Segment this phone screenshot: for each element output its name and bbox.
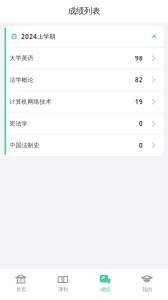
staticText: 我的: [142, 286, 152, 293]
button[interactable]: 课程: [42, 274, 84, 293]
button[interactable]: 宪法学: [4, 113, 163, 134]
button[interactable]: 首页: [0, 274, 42, 293]
button[interactable]: 法学概论: [4, 69, 163, 91]
staticText: 宪法学: [9, 120, 27, 127]
staticText: 课程: [58, 286, 68, 293]
staticText: 法学概论: [9, 76, 33, 84]
staticText: 19: [135, 98, 143, 106]
button[interactable]: 计算机网络技术: [4, 91, 163, 112]
button[interactable]: 成绩: [84, 274, 126, 293]
staticText: 2024上学期: [21, 32, 55, 41]
button[interactable]: 中国法制史: [4, 135, 163, 156]
staticText: 计算机网络技术: [9, 98, 51, 105]
button[interactable]: 2024上学期: [4, 26, 163, 47]
staticText: 82: [135, 76, 143, 84]
staticText: 98: [135, 54, 143, 62]
staticText: 0: [139, 141, 143, 150]
staticText: 中国法制史: [9, 142, 39, 149]
staticText: 首页: [16, 286, 26, 293]
staticText: 成绩: [100, 286, 110, 293]
staticText: 大学英语: [9, 54, 33, 62]
button[interactable]: 我的: [126, 274, 168, 293]
staticText: 成绩列表: [68, 6, 100, 16]
staticText: 0: [139, 119, 143, 128]
button[interactable]: 大学英语: [4, 47, 163, 69]
